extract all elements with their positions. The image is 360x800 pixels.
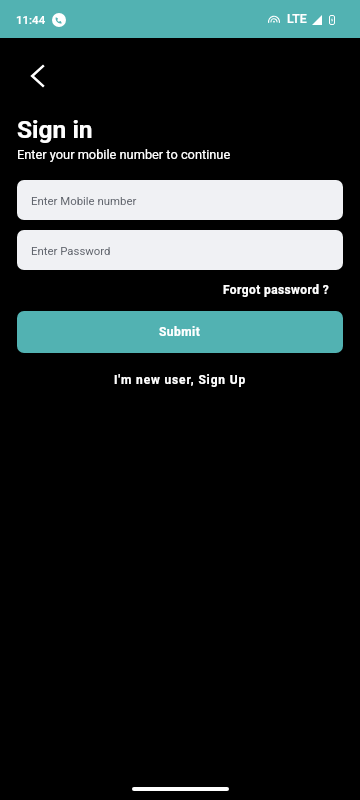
button[interactable]: Back xyxy=(16,54,60,98)
staticText: 11:44 xyxy=(16,13,46,26)
staticText: Sign in xyxy=(17,115,93,144)
button[interactable]: Enter Mobile number xyxy=(17,180,343,220)
staticText: Enter Mobile number xyxy=(31,194,137,207)
button[interactable]: I'm new user, Sign Up xyxy=(108,370,253,390)
button[interactable]: Forgot password ? xyxy=(217,280,336,300)
button[interactable]: Enter Password xyxy=(17,230,343,270)
staticText: Submit xyxy=(159,325,201,339)
staticText: LTE xyxy=(287,12,307,26)
staticText: Enter Password xyxy=(31,244,111,257)
staticText: Enter your mobile number to continue xyxy=(17,147,231,162)
button[interactable]: Submit xyxy=(17,311,343,353)
